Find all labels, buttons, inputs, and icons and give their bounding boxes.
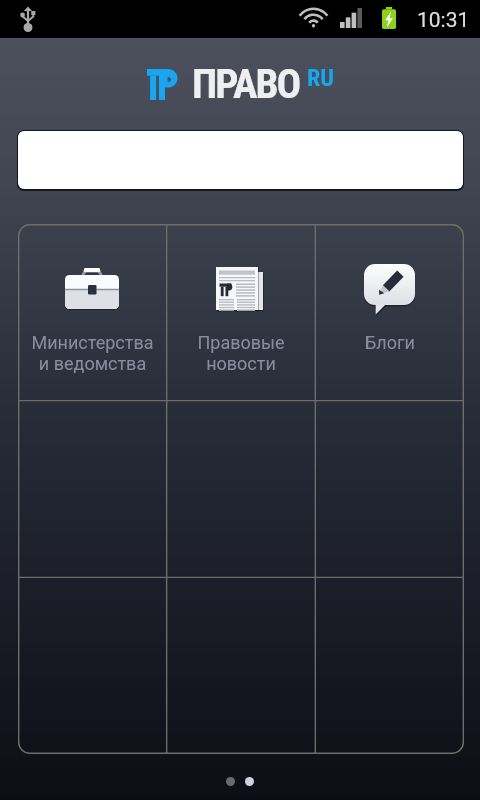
staticText: Правовые новости — [197, 332, 285, 374]
button[interactable]: Правовые новости — [166, 224, 315, 400]
staticText: Министерства и ведомства — [31, 332, 154, 374]
staticText: Блоги — [365, 332, 415, 353]
staticText: ПРАВО — [192, 60, 300, 108]
button[interactable]: Блоги — [315, 224, 464, 400]
button[interactable]: Search — [17, 130, 464, 191]
staticText: RU — [307, 64, 334, 92]
staticText: 10:31 — [417, 8, 470, 33]
button[interactable]: Page 2 — [245, 777, 254, 786]
button[interactable]: Page 1 — [226, 777, 235, 786]
other: USB connected — [20, 6, 36, 31]
button[interactable]: Министерства и ведомства — [18, 224, 166, 400]
